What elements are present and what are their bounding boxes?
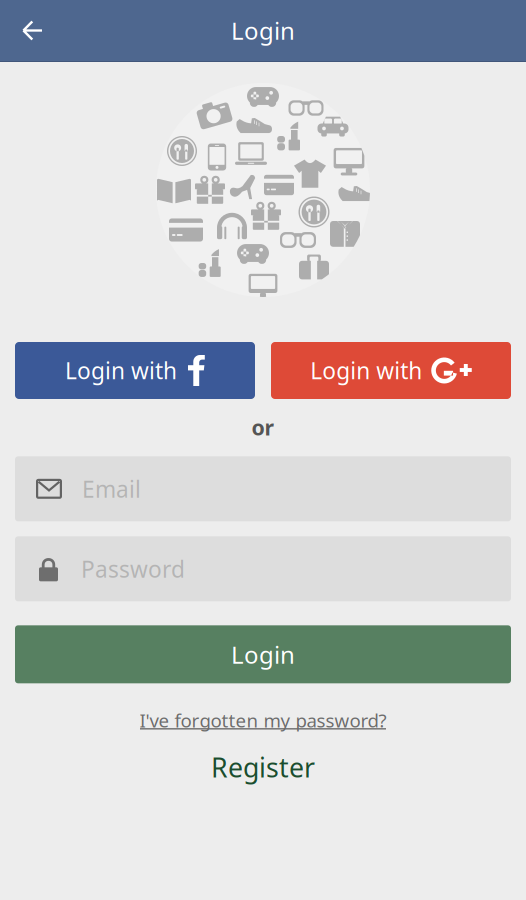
button[interactable]: Login [0, 625, 526, 683]
staticText: Password [81, 554, 185, 584]
staticText: Login with [65, 355, 177, 385]
staticText: or [251, 413, 274, 441]
button[interactable]: Login with [271, 342, 511, 399]
button[interactable]: Login with [15, 342, 255, 399]
button[interactable]: Register [211, 749, 315, 785]
staticText: Login [231, 15, 295, 46]
staticText: Register [211, 749, 315, 785]
staticText: Login with [310, 355, 422, 385]
button[interactable]: I've forgotten my password? [123, 709, 403, 731]
staticText: I've forgotten my password? [139, 708, 386, 733]
button[interactable]: Back [0, 2, 63, 58]
staticText: Email [82, 474, 141, 504]
staticText: Login [231, 638, 295, 670]
